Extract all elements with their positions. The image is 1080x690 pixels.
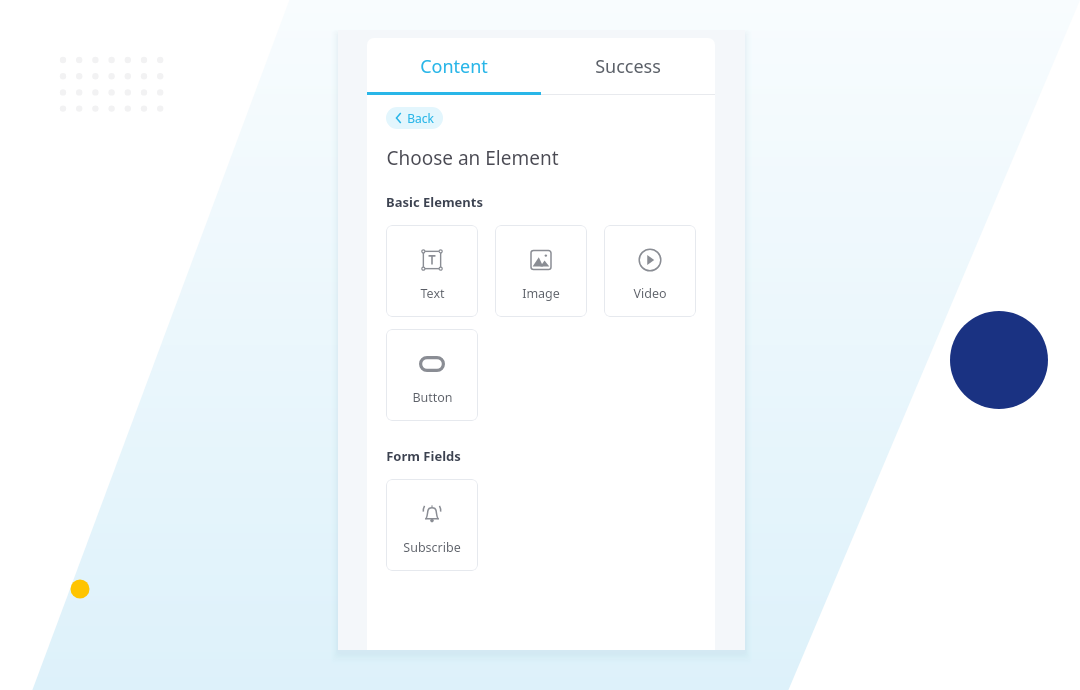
other: Button element [419, 356, 445, 372]
staticText: Video [633, 285, 667, 302]
other: Text element [420, 248, 444, 272]
other: Image element [530, 249, 552, 271]
staticText: Success [595, 54, 661, 79]
staticText: Choose an Element [386, 145, 559, 171]
staticText: Basic Elements [386, 193, 483, 211]
button[interactable]: Text element [386, 225, 478, 317]
staticText: Form Fields [386, 447, 461, 465]
button[interactable]: Success [541, 38, 715, 95]
staticText: Back [407, 110, 434, 126]
staticText: Button [412, 389, 453, 406]
button[interactable]: Button element [386, 329, 478, 421]
staticText: Content [420, 54, 488, 79]
button[interactable]: Back [386, 107, 443, 129]
button[interactable]: Subscribe field [386, 479, 478, 571]
button[interactable]: Video element [604, 225, 696, 317]
button[interactable]: Content [367, 38, 541, 95]
button[interactable]: Image element [495, 225, 587, 317]
staticText: Text [420, 285, 445, 302]
staticText: Image [522, 285, 560, 302]
other: Subscribe field [420, 502, 444, 526]
staticText: Subscribe [403, 539, 461, 556]
other: Video element [638, 248, 662, 272]
